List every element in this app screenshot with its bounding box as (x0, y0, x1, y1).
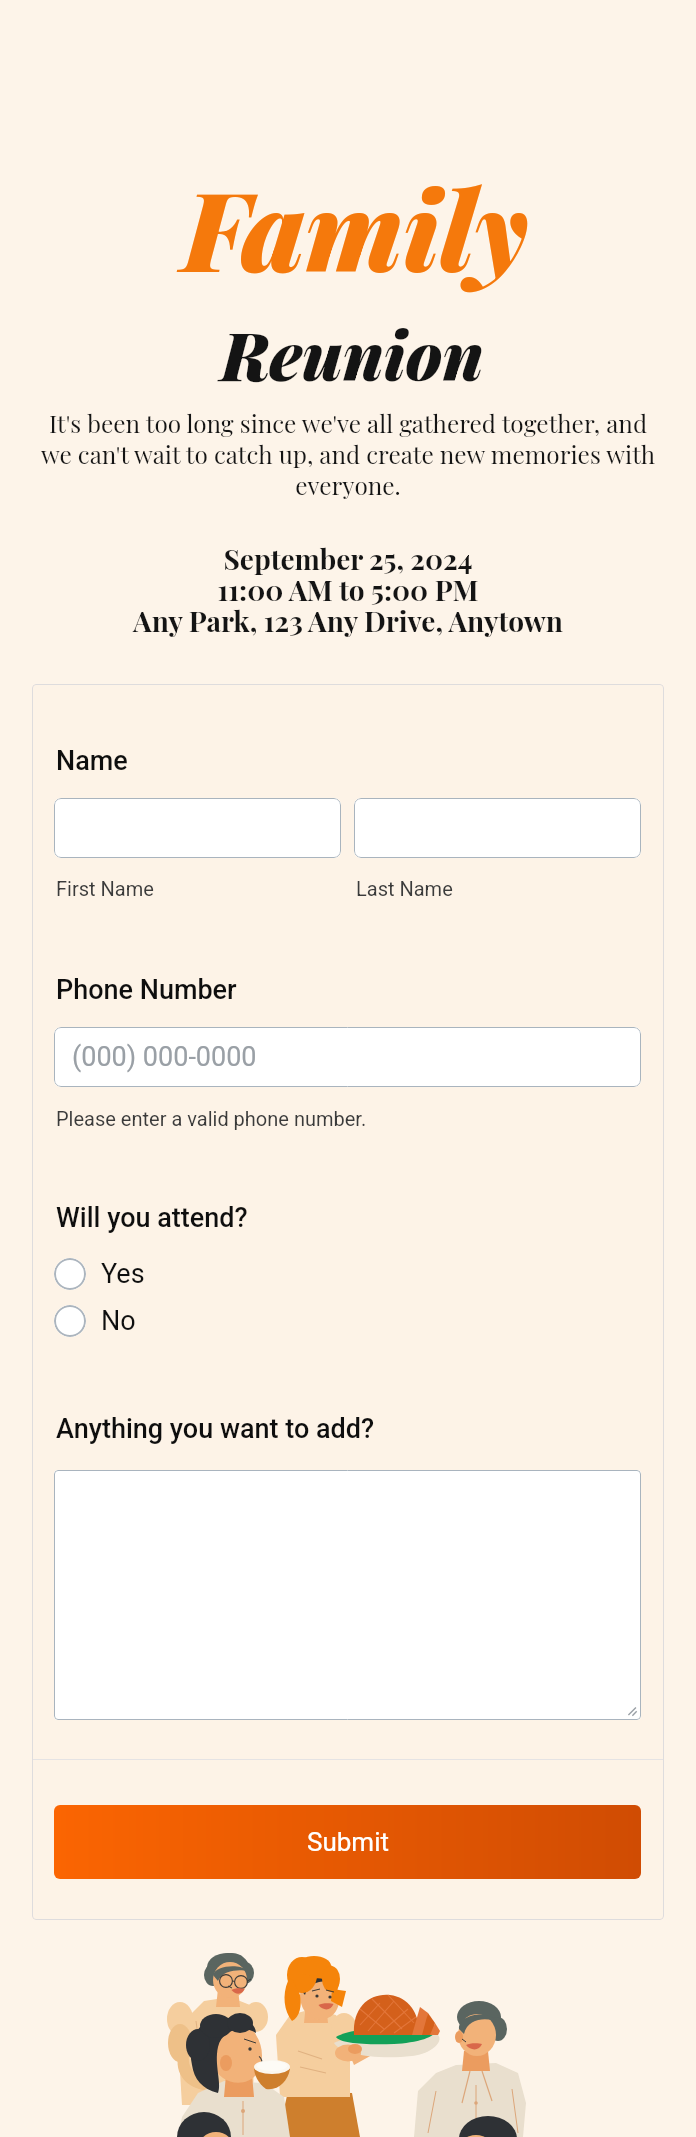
staticText: Anything you want to add? (56, 1413, 375, 1445)
button[interactable] (54, 798, 341, 858)
button[interactable]: No (54, 1305, 136, 1337)
staticText: First Name (56, 877, 154, 900)
staticText: Reunion (4, 310, 696, 398)
staticText: Phone Number (56, 974, 237, 1006)
staticText: Submit (307, 1827, 389, 1857)
button[interactable]: Yes (54, 1258, 145, 1290)
staticText: Last Name (356, 877, 453, 900)
staticText: No (101, 1305, 136, 1337)
button[interactable]: Submit (54, 1805, 641, 1879)
staticText: September 25, 2024 11:00 AM to 5:00 PM A… (0, 540, 696, 639)
button[interactable] (354, 798, 641, 858)
button[interactable]: (000) 000-0000 (54, 1027, 641, 1087)
staticText: Will you attend? (56, 1202, 248, 1234)
staticText: Family (7, 153, 696, 300)
staticText: Please enter a valid phone number. (56, 1107, 367, 1130)
staticText: Name (56, 745, 128, 777)
staticText: It's been too long since we've all gathe… (0, 407, 696, 501)
staticText: Yes (101, 1258, 145, 1290)
staticText: (000) 000-0000 (72, 1041, 257, 1073)
button[interactable] (54, 1470, 641, 1720)
